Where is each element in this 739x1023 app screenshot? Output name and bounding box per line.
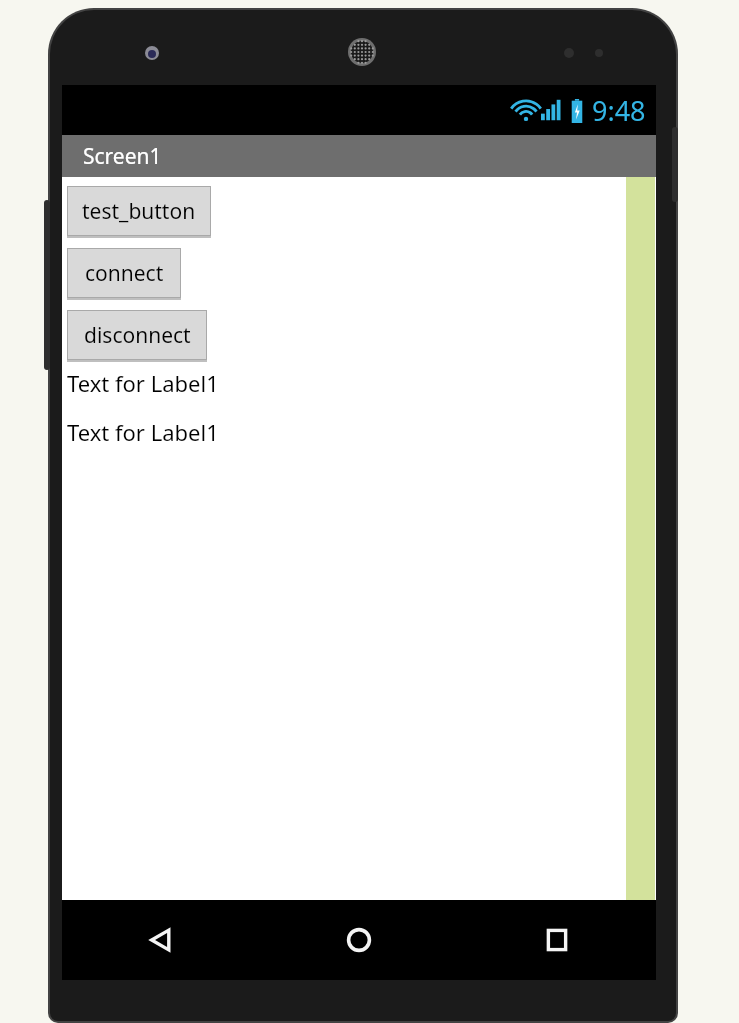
staticText: test_button — [82, 197, 196, 226]
button[interactable]: Home — [260, 900, 458, 980]
button[interactable]: Back — [62, 900, 260, 980]
staticText: 9:48 — [592, 92, 646, 129]
button[interactable]: connect — [68, 249, 180, 297]
staticText: disconnect — [84, 321, 191, 350]
button[interactable]: test_button — [68, 187, 210, 235]
staticText: connect — [85, 259, 164, 288]
button[interactable]: Recents — [458, 900, 656, 980]
staticText: Text for Label1 — [67, 417, 219, 447]
staticText: Screen1 — [83, 142, 162, 171]
staticText: Text for Label1 — [67, 368, 219, 398]
button[interactable]: disconnect — [68, 311, 206, 359]
